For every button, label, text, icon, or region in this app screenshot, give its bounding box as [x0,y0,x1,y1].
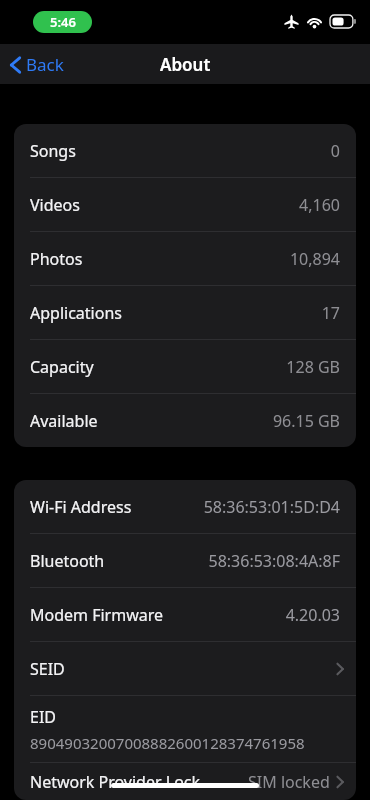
button[interactable]: Songs [14,124,356,177]
button[interactable]: Bluetooth [14,534,356,587]
staticText: 5:46 [50,13,76,31]
staticText: 96.15 GB [272,410,340,432]
staticText: 128 GB [286,356,340,378]
staticText: 10,894 [289,248,340,270]
staticText: SEID [30,658,336,680]
staticText: Back [26,53,64,76]
button[interactable]: SEID [14,642,356,695]
staticText: Modem Firmware [30,604,285,626]
staticText: Available [30,410,272,432]
staticText: Videos [30,194,299,216]
button[interactable]: Network Provider Lock [14,763,356,800]
staticText: 0 [330,140,340,162]
button[interactable]: Available [14,394,356,447]
staticText: Capacity [30,356,286,378]
button[interactable]: Capacity [14,340,356,393]
button[interactable]: Wi-Fi Address [14,480,356,533]
staticText: 17 [321,302,340,324]
staticText: Photos [30,248,289,270]
staticText: 58:36:53:01:5D:D4 [203,496,340,518]
button[interactable]: EID [14,696,356,762]
staticText: Songs [30,140,330,162]
staticText: Applications [30,302,321,324]
button[interactable]: Modem Firmware [14,588,356,641]
staticText: EID [30,706,57,728]
button[interactable]: Applications [14,286,356,339]
staticText: 4,160 [299,194,340,216]
staticText: 58:36:53:08:4A:8F [208,550,340,572]
button[interactable]: Photos [14,232,356,285]
staticText: SIM locked [248,771,330,793]
staticText: Network Provider Lock [30,771,248,793]
staticText: 89049032007008882600128374761958 [30,733,305,753]
staticText: Wi-Fi Address [30,496,203,518]
staticText: 4.20.03 [285,604,340,626]
staticText: Bluetooth [30,550,208,572]
button[interactable]: Videos [14,178,356,231]
button[interactable]: Back [6,49,68,80]
staticText: About [160,53,211,76]
